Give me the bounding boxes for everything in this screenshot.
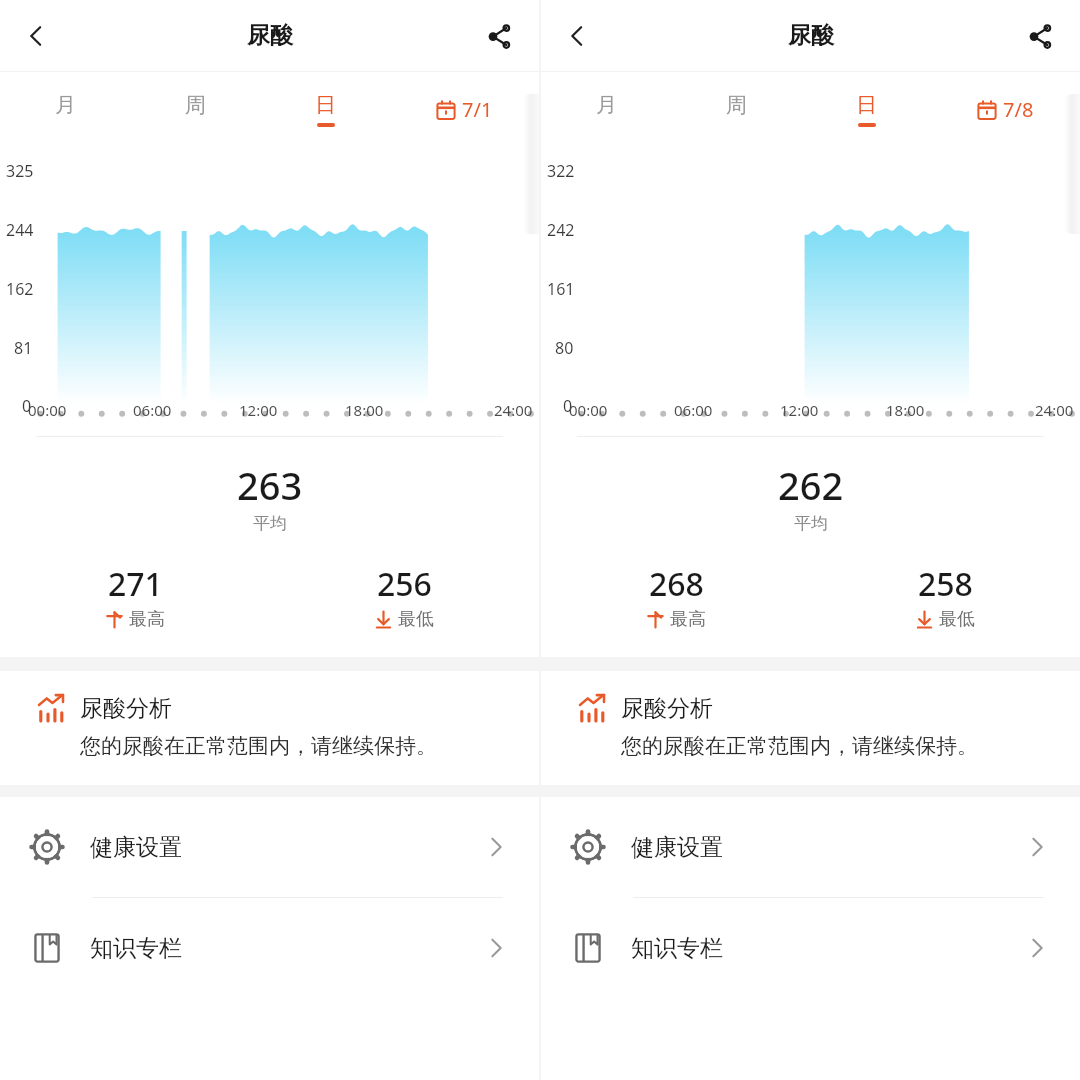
button[interactable]: 月	[0, 72, 130, 147]
staticText: 262	[778, 459, 844, 511]
staticText: 242	[547, 219, 575, 241]
staticText: 161	[547, 278, 575, 300]
staticText: 268	[649, 562, 704, 606]
staticText: 81	[14, 337, 33, 359]
staticText: 月	[55, 92, 76, 118]
staticText: 最高	[129, 608, 165, 631]
staticText: 尿酸	[247, 21, 293, 50]
staticText: 最低	[398, 608, 434, 631]
staticText: 尿酸	[788, 21, 834, 50]
staticText: 尿酸分析	[621, 694, 713, 723]
button[interactable]: 健康设置	[541, 797, 1080, 897]
staticText: 7/1	[462, 96, 493, 123]
staticText: 7/8	[1003, 96, 1034, 123]
staticText: 0	[22, 395, 32, 417]
staticText: 知识专栏	[631, 934, 1024, 963]
staticText: 258	[918, 562, 973, 606]
staticText: 您的尿酸在正常范围内，请继续保持。	[621, 733, 978, 759]
staticText: 24:00	[1035, 400, 1074, 420]
staticText: 00:00	[569, 400, 608, 420]
staticText: 月	[596, 92, 617, 118]
staticText: 80	[555, 337, 574, 359]
button[interactable]: 健康设置	[0, 797, 539, 897]
staticText: 周	[185, 92, 206, 118]
button[interactable]: 尿酸分析	[0, 671, 539, 785]
staticText: 健康设置	[90, 833, 483, 862]
staticText: 最低	[939, 608, 975, 631]
button[interactable]: 月	[541, 72, 671, 147]
staticText: 322	[547, 160, 575, 182]
staticText: 12:00	[239, 400, 278, 420]
staticText: 162	[6, 278, 34, 300]
button[interactable]: 日	[260, 72, 390, 147]
staticText: 知识专栏	[90, 934, 483, 963]
staticText: 06:00	[674, 400, 713, 420]
button[interactable]: 周	[130, 72, 260, 147]
button[interactable]: Share	[1012, 8, 1068, 64]
button[interactable]: 7/8	[977, 96, 1034, 123]
staticText: 日	[856, 92, 877, 118]
button[interactable]: 尿酸分析	[541, 671, 1080, 785]
staticText: 日	[315, 92, 336, 118]
staticText: 271	[108, 562, 163, 606]
staticText: 18:00	[886, 400, 925, 420]
staticText: 健康设置	[631, 833, 1024, 862]
button[interactable]: Back	[8, 8, 64, 64]
staticText: 12:00	[780, 400, 819, 420]
button[interactable]: 日	[801, 72, 931, 147]
staticText: 244	[6, 219, 34, 241]
staticText: 0	[563, 395, 573, 417]
button[interactable]: 知识专栏	[541, 898, 1080, 998]
button[interactable]: 周	[671, 72, 801, 147]
button[interactable]: 知识专栏	[0, 898, 539, 998]
staticText: 您的尿酸在正常范围内，请继续保持。	[80, 733, 437, 759]
staticText: 最高	[670, 608, 706, 631]
staticText: 325	[6, 160, 34, 182]
staticText: 00:00	[28, 400, 67, 420]
staticText: 263	[237, 459, 303, 511]
button[interactable]: 7/1	[436, 96, 493, 123]
staticText: 周	[726, 92, 747, 118]
button[interactable]: Share	[471, 8, 527, 64]
staticText: 尿酸分析	[80, 694, 172, 723]
button[interactable]: Back	[549, 8, 605, 64]
staticText: 06:00	[133, 400, 172, 420]
staticText: 24:00	[494, 400, 533, 420]
staticText: 256	[377, 562, 432, 606]
staticText: 18:00	[345, 400, 384, 420]
staticText: 平均	[253, 513, 287, 534]
staticText: 平均	[794, 513, 828, 534]
